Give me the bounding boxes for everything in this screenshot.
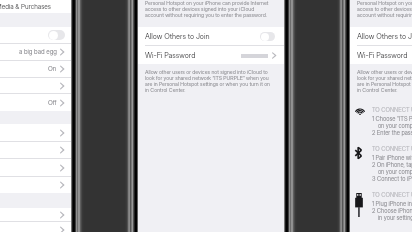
button[interactable]: Allow Others to Join [138, 27, 285, 45]
button[interactable]: Wi-Fi Password [350, 46, 412, 64]
staticText: Wi-Fi Password [145, 51, 196, 60]
staticText: TO CONNECT USING USB [372, 191, 412, 198]
staticText: Personal Hotspot on your iPhone can prov… [357, 0, 412, 18]
staticText: Wi-Fi Password [357, 51, 408, 60]
button[interactable]: Bluetooth [355, 147, 362, 159]
staticText: On [48, 65, 57, 73]
button[interactable]: Off [0, 94, 72, 111]
staticText: Allow other users or devices not signed … [145, 69, 273, 93]
staticText: 2 Enter the password when prompted. [372, 129, 412, 136]
staticText: Personal Hotspot on your iPhone can prov… [145, 0, 273, 18]
button[interactable]: USB [355, 193, 363, 217]
staticText: 3 Connect to iPhone from computer. [372, 175, 412, 182]
button[interactable] [0, 124, 72, 141]
staticText: TO CONNECT USING BLUETOOTH [372, 145, 412, 152]
staticText: Allow Others to Join [357, 32, 412, 41]
staticText: 1 Pair iPhone with your computer. [372, 154, 412, 161]
staticText: on your computer. [372, 168, 412, 175]
button[interactable] [0, 177, 72, 193]
staticText: 1 Plug iPhone into your computer. [372, 200, 412, 207]
button[interactable]: a big bad egg [0, 44, 72, 60]
button[interactable]: Allow Others to Join [260, 32, 275, 41]
button[interactable] [0, 78, 72, 93]
staticText: 2 On iPhone, tap Pair or enter the code … [372, 161, 412, 168]
button[interactable]: On [0, 61, 72, 77]
button[interactable] [0, 142, 72, 158]
button[interactable]: Toggle [48, 30, 65, 40]
button[interactable] [0, 222, 72, 232]
staticText: 2 Choose iPhone from the list of network… [372, 207, 412, 214]
staticText: a big bad egg [19, 48, 57, 56]
staticText: TO CONNECT USING WI-FI [372, 106, 412, 113]
staticText: on your computer or other device. [372, 122, 412, 129]
button[interactable] [0, 159, 72, 176]
staticText: Allow other users or devices not signed … [357, 69, 412, 93]
staticText: in your settings. [372, 214, 412, 221]
staticText: 1 Choose “ITS PURPLE” from the Wi-Fi set… [372, 115, 412, 122]
button[interactable]: Allow Others to Join [350, 27, 412, 45]
button[interactable]: Wi-Fi Password [138, 46, 285, 64]
staticText: Media & Purchases [0, 3, 51, 11]
staticText: Off [48, 99, 57, 107]
button[interactable]: Toggle [0, 27, 72, 43]
button[interactable]: Media & Purchases [0, 0, 72, 13]
button[interactable]: Wi-Fi [355, 107, 365, 115]
button[interactable] [0, 208, 72, 221]
staticText: Allow Others to Join [145, 32, 210, 41]
